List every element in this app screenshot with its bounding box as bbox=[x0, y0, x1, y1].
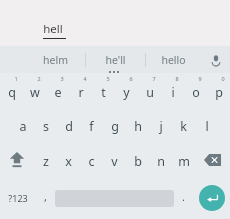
staticText: k bbox=[180, 118, 187, 135]
staticText: 4 bbox=[83, 75, 87, 82]
staticText: c bbox=[88, 153, 95, 170]
staticText: r bbox=[78, 84, 84, 101]
staticText: u bbox=[146, 84, 154, 101]
button[interactable]: . bbox=[174, 177, 193, 219]
staticText: n bbox=[157, 153, 165, 170]
button[interactable]: Backspace bbox=[195, 142, 230, 177]
staticText: y bbox=[123, 84, 130, 101]
button[interactable]: 6 bbox=[115, 73, 138, 107]
staticText: 6 bbox=[129, 75, 133, 82]
button[interactable]: a bbox=[11, 107, 34, 142]
staticText: 8 bbox=[175, 75, 179, 82]
button[interactable]: n bbox=[149, 142, 172, 177]
button[interactable]: k bbox=[172, 107, 195, 142]
button[interactable]: 4 bbox=[69, 73, 92, 107]
staticText: he'll bbox=[105, 53, 126, 67]
staticText: helm bbox=[43, 53, 68, 67]
staticText: hello bbox=[161, 53, 186, 67]
button[interactable]: 3 bbox=[46, 73, 69, 107]
staticText: w bbox=[30, 84, 40, 101]
button[interactable]: x bbox=[57, 142, 80, 177]
staticText: q bbox=[8, 84, 16, 101]
staticText: i bbox=[171, 84, 175, 101]
button[interactable]: g bbox=[103, 107, 126, 142]
staticText: ?123 bbox=[8, 192, 28, 204]
button[interactable]: 7 bbox=[138, 73, 161, 107]
staticText: . bbox=[182, 189, 185, 204]
button[interactable]: helm bbox=[25, 46, 85, 73]
button[interactable]: he'll bbox=[86, 46, 145, 73]
staticText: 3 bbox=[60, 75, 64, 82]
button[interactable]: hello bbox=[146, 46, 201, 73]
staticText: 7 bbox=[152, 75, 156, 82]
button[interactable]: Shift bbox=[0, 142, 34, 177]
staticText: x bbox=[65, 153, 72, 170]
staticText: g bbox=[111, 118, 119, 135]
staticText: m bbox=[178, 153, 190, 170]
staticText: 0 bbox=[221, 75, 225, 82]
button[interactable]: 0 bbox=[207, 73, 230, 107]
staticText: a bbox=[19, 118, 27, 135]
button[interactable]: Enter bbox=[193, 177, 230, 219]
staticText: l bbox=[205, 118, 209, 135]
button[interactable]: v bbox=[103, 142, 126, 177]
staticText: e bbox=[54, 84, 62, 101]
staticText: d bbox=[65, 118, 73, 135]
staticText: p bbox=[215, 84, 223, 101]
button[interactable]: m bbox=[172, 142, 195, 177]
button[interactable]: 1 bbox=[0, 73, 23, 107]
staticText: 5 bbox=[106, 75, 110, 82]
button[interactable]: z bbox=[34, 142, 57, 177]
button[interactable] bbox=[55, 177, 174, 219]
button[interactable]: l bbox=[195, 107, 218, 142]
button[interactable]: Voice input bbox=[201, 46, 230, 73]
staticText: hell bbox=[43, 21, 63, 37]
button[interactable]: 5 bbox=[92, 73, 115, 107]
staticText: s bbox=[43, 118, 49, 135]
button[interactable]: 2 bbox=[23, 73, 46, 107]
staticText: , bbox=[44, 189, 47, 204]
staticText: 9 bbox=[198, 75, 202, 82]
button[interactable]: d bbox=[57, 107, 80, 142]
button[interactable]: b bbox=[126, 142, 149, 177]
staticText: j bbox=[159, 118, 163, 135]
button[interactable]: f bbox=[80, 107, 103, 142]
staticText: 1 bbox=[14, 75, 18, 82]
staticText: b bbox=[134, 153, 142, 170]
button[interactable]: 9 bbox=[184, 73, 207, 107]
staticText: f bbox=[89, 118, 94, 135]
button[interactable]: , bbox=[36, 177, 55, 219]
button[interactable]: 8 bbox=[161, 73, 184, 107]
staticText: h bbox=[134, 118, 142, 135]
staticText: o bbox=[192, 84, 200, 101]
button[interactable]: s bbox=[34, 107, 57, 142]
staticText: z bbox=[43, 153, 49, 170]
button[interactable]: j bbox=[149, 107, 172, 142]
button[interactable]: h bbox=[126, 107, 149, 142]
button[interactable]: ?123 bbox=[0, 177, 36, 219]
staticText: v bbox=[111, 153, 118, 170]
button[interactable]: c bbox=[80, 142, 103, 177]
staticText: 2 bbox=[37, 75, 41, 82]
staticText: t bbox=[101, 84, 106, 101]
